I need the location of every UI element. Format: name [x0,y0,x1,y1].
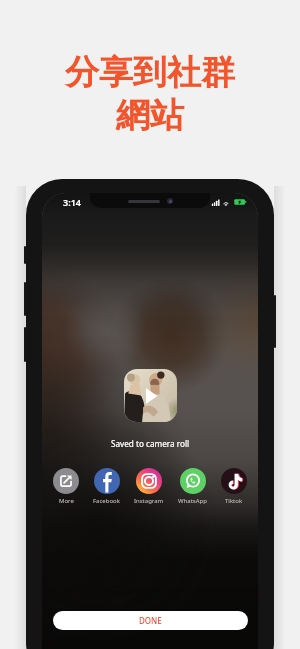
staticText: 分享到社群 [65,51,235,94]
staticText: More [59,497,74,505]
staticText: DONE [139,615,162,626]
staticText: Saved to camera roll [111,438,190,449]
button[interactable]: DONE [53,611,248,630]
staticText: WhatsApp [178,497,207,505]
button[interactable]: Facebook [93,468,120,505]
staticText: Instagram [134,497,164,505]
button[interactable]: More [53,468,79,505]
staticText: Facebook [93,497,120,505]
staticText: Tiktok [225,497,243,505]
staticText: 網站 [116,94,184,137]
button[interactable]: Tiktok [221,468,247,505]
button[interactable]: Instagram [134,468,164,505]
staticText: 3:14 [63,196,81,208]
button[interactable]: WhatsApp [178,468,207,505]
